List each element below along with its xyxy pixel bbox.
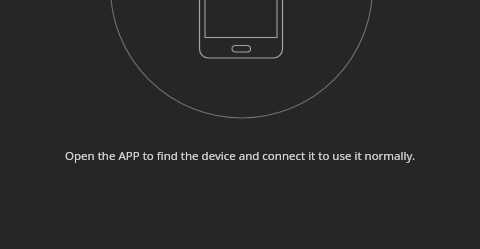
staticText: Open the APP to find the device and conn… — [20, 148, 460, 164]
